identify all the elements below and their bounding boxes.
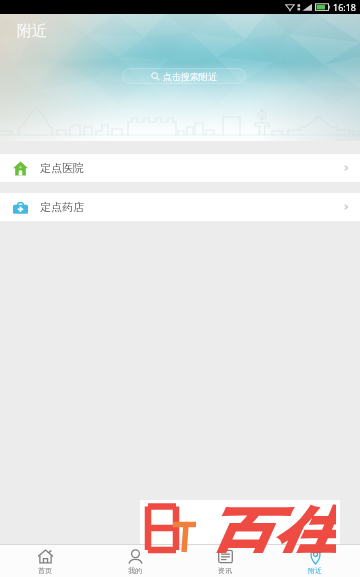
button[interactable]: 点击搜索附近: [122, 68, 246, 84]
staticText: 资讯: [218, 566, 232, 575]
staticText: 定点医院: [40, 161, 84, 175]
button[interactable]: 我的: [90, 545, 180, 577]
staticText: 16:18: [333, 1, 357, 13]
staticText: 附近: [17, 22, 47, 41]
staticText: 首页: [38, 566, 52, 575]
staticText: 定点药店: [40, 200, 84, 214]
button[interactable]: 定点药店: [0, 193, 360, 221]
staticText: 百佳: [202, 497, 336, 553]
button[interactable]: 附近: [270, 545, 360, 577]
button[interactable]: 资讯: [180, 545, 270, 577]
button[interactable]: 首页: [0, 545, 90, 577]
button[interactable]: 定点医院: [0, 154, 360, 182]
staticText: 我的: [128, 566, 142, 575]
staticText: 点击搜索附近: [163, 71, 217, 82]
staticText: 附近: [308, 566, 322, 575]
